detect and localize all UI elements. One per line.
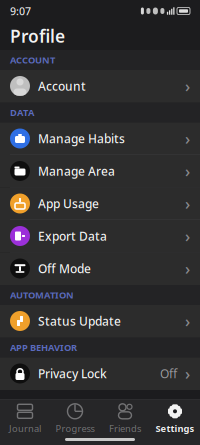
staticText: › [185, 75, 190, 97]
staticText: Manage Area [38, 163, 115, 179]
staticText: Journal [9, 422, 41, 435]
staticText: APP BEHAVIOR [10, 341, 77, 354]
staticText: › [185, 310, 190, 332]
staticText: DATA [10, 106, 34, 119]
staticText: Export Data [38, 228, 107, 244]
staticText: › [185, 160, 190, 182]
button[interactable]: Manage Habits [0, 122, 200, 155]
staticText: ACCOUNT [10, 54, 55, 66]
button[interactable]: Privacy Lock [0, 357, 200, 390]
staticText: Status Update [38, 313, 121, 329]
staticText: › [185, 128, 190, 149]
button[interactable]: Manage Area [0, 155, 200, 187]
staticText: Privacy Lock [38, 365, 107, 381]
staticText: › [185, 225, 190, 247]
staticText: › [185, 193, 190, 214]
staticText: Off Mode [38, 260, 91, 276]
staticText: Manage Habits [38, 130, 125, 146]
staticText: Off [160, 365, 177, 381]
button[interactable]: Progress [50, 398, 100, 438]
staticText: Account [38, 78, 86, 94]
button[interactable]: Export Data [0, 220, 200, 252]
staticText: App Usage [38, 195, 99, 211]
button[interactable]: Settings [150, 398, 200, 438]
staticText: › [185, 363, 190, 384]
staticText: Profile [10, 24, 65, 47]
staticText: › [185, 258, 190, 279]
button[interactable]: App Usage [0, 187, 200, 220]
staticText: Progress [55, 422, 94, 435]
staticText: Friends [109, 422, 141, 435]
button[interactable]: Journal [0, 398, 50, 438]
staticText: Settings [155, 422, 194, 435]
staticText: AUTOMATION [10, 289, 74, 301]
button[interactable]: Off Mode [0, 252, 200, 285]
button[interactable]: Status Update [0, 305, 200, 337]
staticText: 9:07 [10, 4, 31, 18]
button[interactable]: Friends [100, 398, 150, 438]
button[interactable]: Account [0, 70, 200, 102]
